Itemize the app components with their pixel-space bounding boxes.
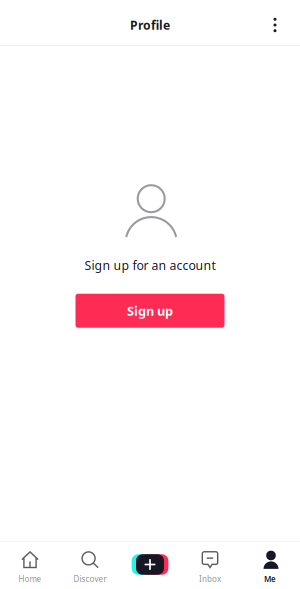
- staticText: Home: [18, 574, 41, 584]
- button[interactable]: Inbox: [180, 541, 240, 589]
- staticText: Me: [264, 574, 276, 584]
- staticText: Inbox: [199, 574, 221, 584]
- staticText: Sign up: [127, 302, 173, 319]
- button[interactable]: More options: [255, 3, 295, 43]
- staticText: Profile: [130, 17, 170, 33]
- button[interactable]: Sign up: [75, 294, 224, 328]
- button[interactable]: Create: [120, 541, 180, 589]
- button[interactable]: Me: [240, 541, 300, 589]
- staticText: Discover: [73, 574, 106, 584]
- button[interactable]: Discover: [60, 541, 120, 589]
- staticText: Sign up for an account: [84, 257, 215, 274]
- button[interactable]: Home: [0, 541, 60, 589]
